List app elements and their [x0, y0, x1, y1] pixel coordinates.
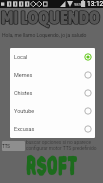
button[interactable]: Memes — [10, 66, 95, 84]
staticText: 13:12 — [87, 0, 103, 8]
staticText: Hola, me llamo Loquendo, jo ja saludo — [2, 32, 87, 38]
staticText: TTS Settings — [2, 144, 25, 149]
staticText: Chistes — [14, 90, 33, 96]
button[interactable]: Local — [10, 48, 95, 66]
button[interactable]: Chistes — [10, 84, 95, 102]
staticText: buscar opciones si no aparece configurar… — [26, 140, 97, 152]
button[interactable]: TTS Settings — [2, 141, 25, 151]
button[interactable]: Excusas — [10, 120, 95, 138]
staticText: RSOFT — [26, 150, 77, 183]
staticText: 98% — [74, 2, 82, 7]
staticText: Excusas — [14, 126, 35, 132]
staticText: Youtube — [14, 108, 35, 114]
staticText: MI LOQUENDO — [1, 7, 100, 28]
staticText: MI LOQUENDO — [1, 7, 100, 28]
staticText: Memes — [14, 72, 33, 78]
button[interactable]: Youtube — [10, 102, 95, 120]
staticText: Local — [14, 54, 28, 60]
